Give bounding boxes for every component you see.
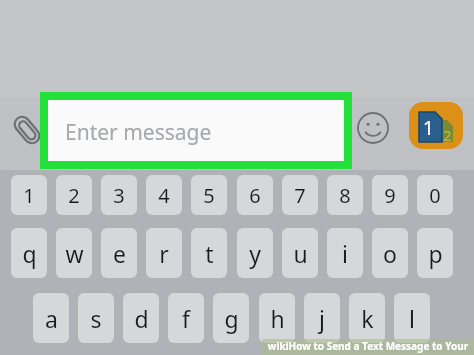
- staticText: e: [113, 238, 126, 269]
- button[interactable]: j: [304, 293, 340, 343]
- staticText: 6: [249, 182, 261, 209]
- button[interactable]: 3: [101, 175, 137, 215]
- staticText: 8: [339, 182, 351, 209]
- staticText: g: [224, 303, 239, 334]
- button[interactable]: p: [417, 228, 453, 278]
- button[interactable]: u: [282, 228, 318, 278]
- staticText: s: [90, 303, 102, 334]
- staticText: i: [342, 238, 348, 269]
- staticText: p: [428, 238, 443, 269]
- button[interactable]: Send with SIM 1: [409, 102, 463, 149]
- button[interactable]: d: [123, 293, 159, 343]
- button[interactable]: Insert emoji: [355, 110, 391, 146]
- staticText: u: [293, 238, 308, 269]
- button[interactable]: t: [191, 228, 227, 278]
- staticText: o: [383, 238, 397, 269]
- staticText: wikiHow to Send a Text Message to Your E…: [262, 339, 474, 355]
- staticText: a: [45, 303, 58, 334]
- staticText: f: [182, 303, 190, 334]
- staticText: r: [159, 238, 169, 269]
- button[interactable]: q: [11, 228, 47, 278]
- button[interactable]: 1: [11, 175, 47, 215]
- button[interactable]: l: [394, 293, 430, 343]
- button[interactable]: r: [146, 228, 182, 278]
- button[interactable]: 7: [282, 175, 318, 215]
- staticText: t: [205, 238, 214, 269]
- staticText: 2: [443, 125, 452, 145]
- button[interactable]: 2: [56, 175, 92, 215]
- staticText: 0: [429, 182, 441, 209]
- button[interactable]: f: [168, 293, 204, 343]
- button[interactable]: e: [101, 228, 137, 278]
- staticText: h: [270, 303, 285, 334]
- staticText: 4: [158, 182, 170, 209]
- button[interactable]: i: [327, 228, 363, 278]
- staticText: 2: [68, 182, 80, 209]
- button[interactable]: y: [237, 228, 273, 278]
- staticText: d: [134, 303, 149, 334]
- button[interactable]: w: [56, 228, 92, 278]
- button[interactable]: o: [372, 228, 408, 278]
- button[interactable]: Attach file: [6, 109, 48, 151]
- staticText: 5: [203, 182, 215, 209]
- button[interactable]: 5: [191, 175, 227, 215]
- button[interactable]: 6: [237, 175, 273, 215]
- button[interactable]: 0: [417, 175, 453, 215]
- staticText: y: [249, 238, 261, 269]
- button[interactable]: a: [33, 293, 69, 343]
- button[interactable]: 4: [146, 175, 182, 215]
- staticText: l: [409, 303, 415, 334]
- staticText: 9: [384, 182, 396, 209]
- staticText: 1: [23, 182, 35, 209]
- button[interactable]: 8: [327, 175, 363, 215]
- staticText: 1: [423, 115, 434, 141]
- button[interactable]: 9: [372, 175, 408, 215]
- staticText: q: [22, 238, 37, 269]
- button[interactable]: Enter message: [40, 92, 352, 169]
- button[interactable]: h: [259, 293, 295, 343]
- staticText: w: [65, 238, 84, 269]
- button[interactable]: k: [349, 293, 385, 343]
- staticText: 7: [294, 182, 306, 209]
- staticText: k: [361, 303, 374, 334]
- button[interactable]: s: [78, 293, 114, 343]
- staticText: Enter message: [65, 118, 212, 147]
- staticText: 3: [113, 182, 125, 209]
- staticText: j: [319, 303, 325, 334]
- button[interactable]: g: [213, 293, 249, 343]
